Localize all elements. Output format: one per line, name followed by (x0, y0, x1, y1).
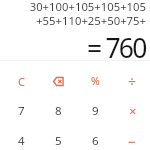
staticText: % (91, 74, 100, 88)
button[interactable]: ÷ (114, 66, 150, 96)
button[interactable]: 5 (40, 126, 77, 150)
staticText: ÷ (128, 72, 137, 91)
staticText: × (129, 102, 137, 120)
button[interactable]: 8 (40, 96, 77, 126)
staticText: 9 (92, 103, 99, 119)
button[interactable]: 4 (3, 126, 40, 150)
staticText: 8 (55, 103, 62, 119)
staticText: 30+100+105+105+105 +55+110+25+50+75+ (29, 0, 146, 29)
button[interactable]: 6 (77, 126, 114, 150)
button[interactable]: C (3, 66, 40, 96)
staticText: 6 (92, 133, 99, 149)
button[interactable]: × (114, 96, 150, 126)
staticText: 4 (18, 133, 25, 149)
button[interactable]: 9 (77, 96, 114, 126)
button[interactable] (40, 66, 77, 96)
staticText: = 760 (87, 30, 146, 66)
staticText: 7 (18, 103, 25, 119)
staticText: 5 (55, 133, 62, 149)
button[interactable]: − (114, 126, 150, 150)
staticText: − (128, 132, 137, 150)
button[interactable]: % (77, 66, 114, 96)
staticText: C (18, 74, 25, 89)
button[interactable]: 7 (3, 96, 40, 126)
